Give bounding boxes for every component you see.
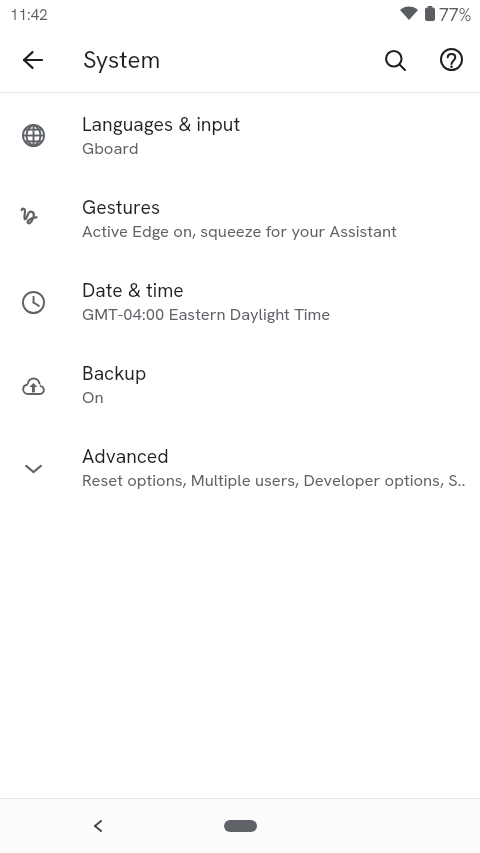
staticText: Gboard bbox=[82, 137, 139, 159]
button[interactable]: Help bbox=[427, 35, 475, 83]
staticText: On bbox=[82, 386, 104, 408]
staticText: 11:42 bbox=[10, 5, 48, 25]
button[interactable]: Navigate up bbox=[8, 36, 56, 84]
staticText: Date & time bbox=[82, 278, 184, 303]
staticText: Languages & input bbox=[82, 112, 241, 137]
staticText: Advanced bbox=[82, 444, 169, 469]
button[interactable]: Date & time bbox=[0, 260, 480, 343]
staticText: Reset options, Multiple users, Developer… bbox=[82, 469, 466, 491]
button[interactable]: Advanced bbox=[0, 426, 480, 509]
staticText: 77% bbox=[439, 3, 472, 26]
staticText: System bbox=[83, 44, 161, 75]
button[interactable]: Languages & input bbox=[0, 94, 480, 177]
button[interactable]: Gestures bbox=[0, 177, 480, 260]
button[interactable]: Search bbox=[371, 36, 419, 84]
staticText: Active Edge on, squeeze for your Assista… bbox=[82, 220, 397, 242]
button[interactable]: Back bbox=[78, 806, 118, 846]
staticText: Gestures bbox=[82, 195, 161, 220]
staticText: Backup bbox=[82, 361, 147, 386]
button[interactable]: Backup bbox=[0, 343, 480, 426]
staticText: GMT-04:00 Eastern Daylight Time bbox=[82, 303, 331, 325]
button[interactable]: Home bbox=[224, 820, 257, 832]
